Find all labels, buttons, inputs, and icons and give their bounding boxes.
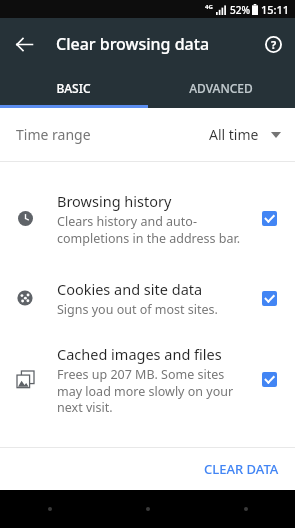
staticText: Time range	[16, 125, 91, 144]
staticText: 4G	[205, 3, 213, 11]
staticText: Cached images and files	[57, 344, 222, 364]
button[interactable]: Checked	[257, 206, 281, 230]
staticText: BASIC	[56, 80, 91, 96]
button[interactable]: BASIC	[0, 70, 147, 105]
staticText: ?	[271, 37, 277, 52]
staticText: Browsing history	[57, 191, 172, 211]
button[interactable]: ADVANCED	[147, 70, 295, 105]
button[interactable]: CLEAR DATA	[194, 452, 289, 486]
button[interactable]: Cookies and site data	[0, 263, 295, 333]
button[interactable]: Checked	[257, 286, 281, 310]
button[interactable]: Cached images and files	[0, 333, 295, 425]
staticText: 15:11	[261, 2, 290, 17]
button[interactable]: Back	[6, 26, 42, 62]
button[interactable]: Help	[255, 26, 291, 62]
staticText: Cookies and site data	[57, 279, 203, 299]
staticText: CLEAR DATA	[204, 460, 279, 478]
button[interactable]: Time range	[0, 108, 295, 161]
staticText: Clears history and auto-completions in t…	[57, 213, 245, 246]
button[interactable]: Checked	[257, 367, 281, 391]
staticText: 52%	[230, 3, 250, 17]
staticText: ADVANCED	[189, 80, 253, 96]
staticText: Clear browsing data	[56, 33, 210, 55]
button[interactable]: Recents	[197, 490, 295, 528]
staticText: All time	[209, 125, 259, 144]
staticText: Signs you out of most sites.	[57, 301, 218, 318]
button[interactable]: Home	[99, 490, 197, 528]
button[interactable]: Back	[0, 490, 99, 528]
button[interactable]: Browsing history	[0, 173, 295, 263]
staticText: Frees up 207 MB. Some sites may load mor…	[57, 366, 245, 415]
